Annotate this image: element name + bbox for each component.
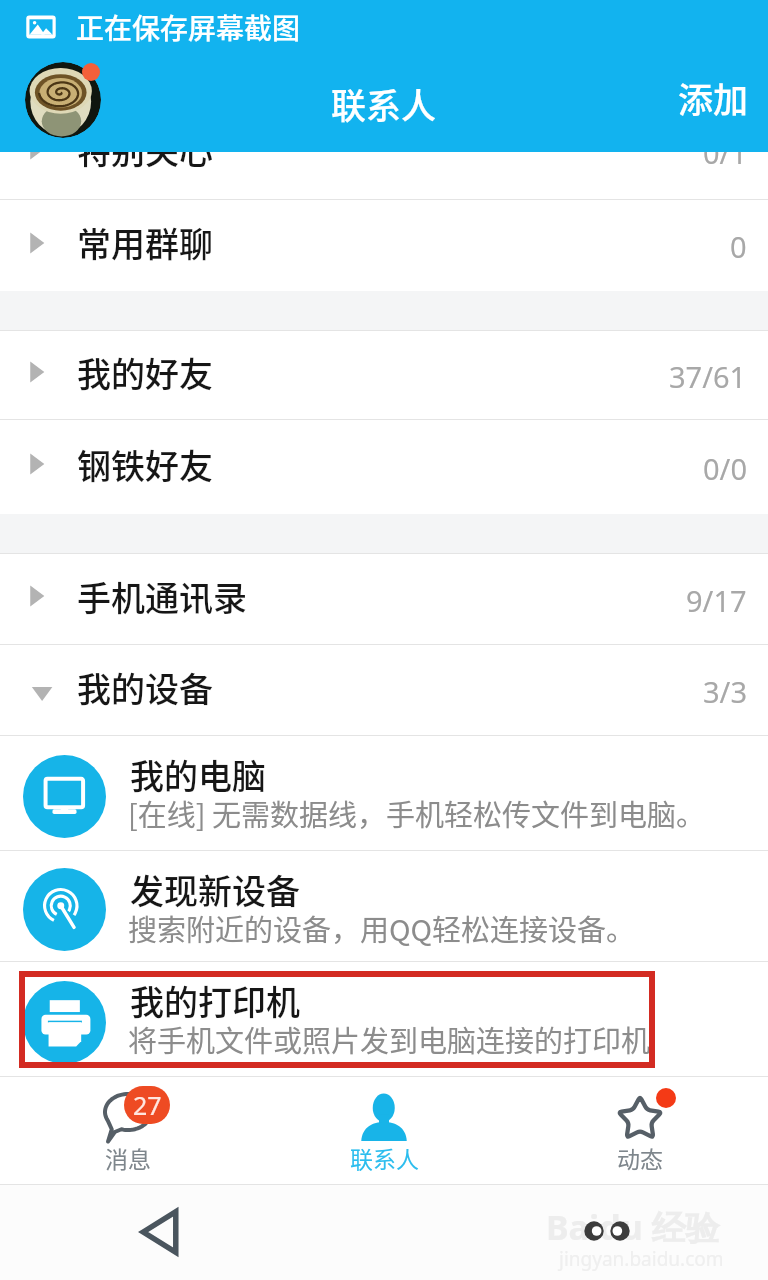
staticText: 特别关心 bbox=[77, 125, 213, 172]
staticText: jingyan.baidu.com bbox=[559, 1246, 724, 1272]
staticText: 将手机文件或照片发到电脑连接的打印机 bbox=[128, 1018, 651, 1060]
button[interactable]: 发现新设备 bbox=[0, 851, 768, 961]
button[interactable]: 我的设备 bbox=[0, 645, 768, 735]
button[interactable]: 特别关心 bbox=[0, 152, 768, 199]
staticText: 我的电脑 bbox=[130, 750, 266, 799]
staticText: 联系人 bbox=[331, 78, 437, 129]
button[interactable]: Back bbox=[127, 1200, 191, 1264]
staticText: 搜索附近的设备，用QQ轻松连接设备。 bbox=[128, 907, 636, 949]
button[interactable]: 联系人 bbox=[256, 1077, 512, 1184]
staticText: 手机通讯录 bbox=[77, 572, 247, 621]
staticText: 27 bbox=[133, 1088, 162, 1122]
button[interactable]: 手机通讯录 bbox=[0, 554, 768, 644]
button[interactable]: 27 bbox=[0, 1077, 256, 1184]
staticText: 0/0 bbox=[703, 449, 747, 488]
button[interactable]: Profile bbox=[25, 62, 101, 138]
staticText: [在线] 无需数据线，手机轻松传文件到电脑。 bbox=[128, 792, 706, 834]
button[interactable]: 我的打印机 bbox=[0, 962, 768, 1076]
staticText: 我的打印机 bbox=[130, 976, 300, 1025]
button[interactable]: 常用群聊 bbox=[0, 200, 768, 291]
staticText: 我的设备 bbox=[77, 663, 213, 712]
staticText: 我的好友 bbox=[77, 348, 213, 397]
staticText: 3/3 bbox=[703, 672, 747, 711]
staticText: 37/61 bbox=[669, 357, 747, 396]
button[interactable]: 钢铁好友 bbox=[0, 420, 768, 514]
staticText: 发现新设备 bbox=[130, 865, 300, 914]
staticText: 0/1 bbox=[703, 133, 747, 172]
staticText: 0 bbox=[730, 227, 747, 266]
button[interactable]: 我的好友 bbox=[0, 331, 768, 419]
staticText: 9/17 bbox=[686, 581, 747, 620]
staticText: 正在保存屏幕截图 bbox=[76, 7, 301, 48]
button[interactable]: 我的电脑 bbox=[0, 736, 768, 850]
staticText: 消息 bbox=[105, 1141, 151, 1174]
staticText: 钢铁好友 bbox=[77, 440, 213, 489]
staticText: 联系人 bbox=[350, 1141, 419, 1174]
button[interactable]: 添加 bbox=[655, 66, 768, 129]
staticText: 添加 bbox=[678, 72, 749, 123]
staticText: 常用群聊 bbox=[77, 218, 213, 267]
button[interactable]: 动态 bbox=[512, 1077, 768, 1184]
staticText: Baidu 经验 bbox=[546, 1204, 720, 1250]
staticText: 动态 bbox=[617, 1141, 663, 1174]
